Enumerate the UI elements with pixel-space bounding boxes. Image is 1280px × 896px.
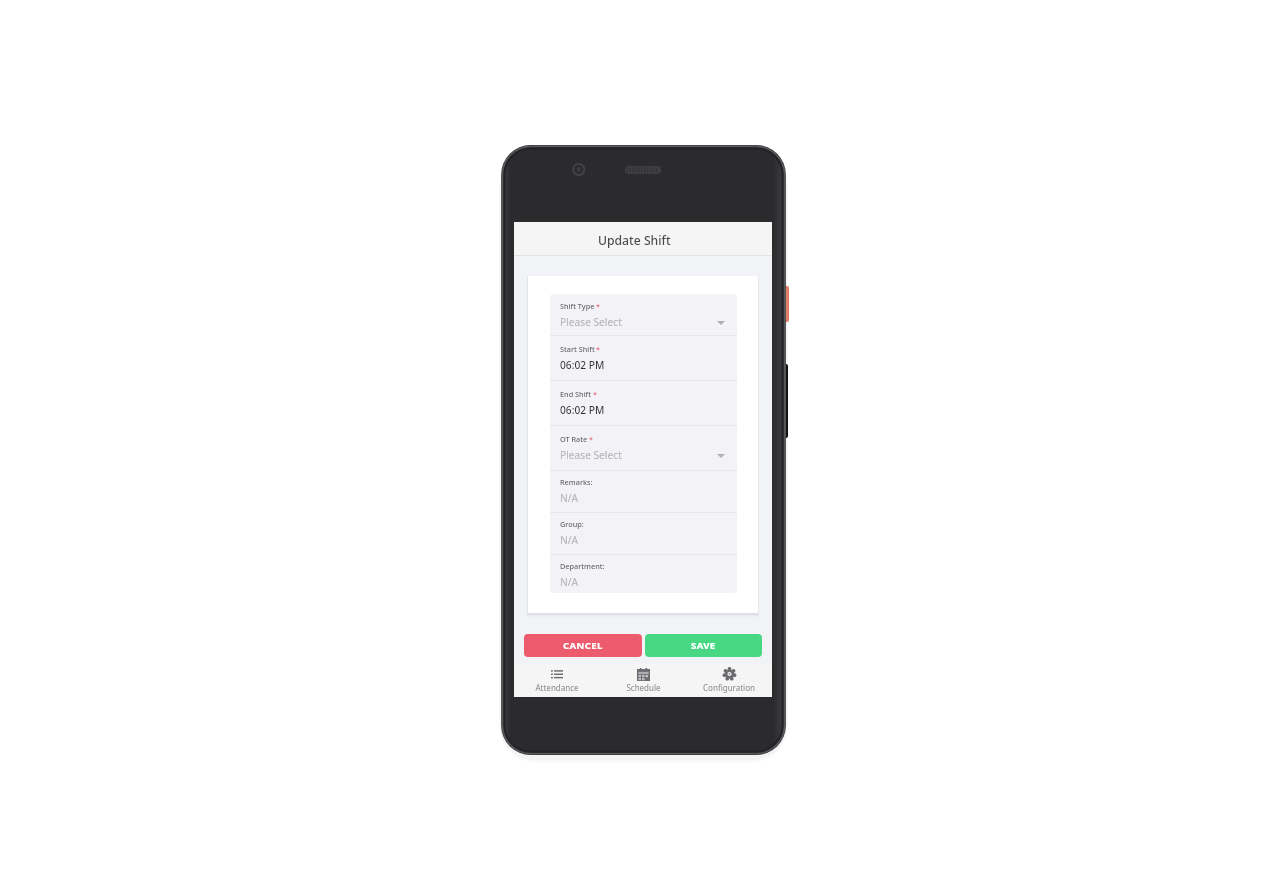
staticText: Group: <box>560 519 584 529</box>
staticText: Start Shift <box>560 344 595 354</box>
staticText: 06:02 PM <box>560 403 605 417</box>
button[interactable]: Remarks: <box>550 470 737 513</box>
staticText: CANCEL <box>563 639 603 652</box>
staticText: Remarks: <box>560 477 593 487</box>
staticText: Attendance <box>535 682 579 693</box>
staticText: * <box>596 301 601 311</box>
staticText: End Shift <box>560 389 592 399</box>
staticText: Department: <box>560 561 605 571</box>
staticText: Shift Type <box>560 301 595 311</box>
button[interactable]: Start Shift <box>550 335 737 380</box>
button[interactable]: Department: <box>550 554 737 592</box>
staticText: N/A <box>560 491 579 505</box>
staticText: * <box>589 434 594 444</box>
staticText: Update Shift <box>598 232 671 249</box>
button[interactable]: Schedule <box>600 664 686 677</box>
button[interactable]: OT Rate <box>550 425 737 469</box>
staticText: Please Select <box>560 448 622 462</box>
staticText: 06:02 PM <box>560 358 605 372</box>
button[interactable]: Attendance <box>514 664 600 675</box>
button[interactable]: End Shift <box>550 380 737 426</box>
staticText: Schedule <box>626 682 661 693</box>
button[interactable]: CANCEL <box>524 634 642 657</box>
staticText: N/A <box>560 575 579 589</box>
staticText: * <box>596 344 601 354</box>
staticText: N/A <box>560 533 579 547</box>
button[interactable]: Configuration <box>686 664 772 678</box>
staticText: OT Rate <box>560 434 588 444</box>
button[interactable]: Shift Type <box>550 294 737 335</box>
button[interactable]: Group: <box>550 512 737 554</box>
staticText: * <box>593 389 598 399</box>
staticText: Configuration <box>703 682 755 693</box>
staticText: Please Select <box>560 315 622 329</box>
button[interactable]: SAVE <box>645 634 762 657</box>
staticText: SAVE <box>691 639 716 652</box>
